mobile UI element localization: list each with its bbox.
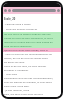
button[interactable]: Address bar bbox=[12, 9, 56, 12]
staticText: d'Egypte, pour être votre Dieu. Je suis bbox=[4, 96, 60, 97]
staticText: · Vous vous bbox=[4, 72, 60, 76]
button[interactable]: Home bbox=[8, 9, 11, 12]
staticText: · Je suis l'Eternel, votre bbox=[4, 88, 60, 92]
staticText: entraîner à l'infidélité. bbox=[4, 68, 60, 72]
button[interactable]: Back bbox=[4, 9, 7, 12]
staticText: · Vous ce que tous les commandements de bbox=[4, 52, 60, 56]
staticText: dis-leur qu'ils se fassent d'âge en âge … bbox=[4, 32, 60, 36]
staticText: saints pour votre Dieu. bbox=[4, 84, 60, 88]
staticText: mettent un cordon bleu sur cette frange … bbox=[4, 40, 60, 44]
staticText: coeur et de vos yeux, en vous laissant bbox=[4, 64, 60, 68]
staticText: Ecole, 20 bbox=[4, 17, 60, 21]
staticText: Quand vous aurez cette frange, vous la r… bbox=[4, 48, 60, 52]
staticText: souviendrez ainsi de mes commandements, bbox=[4, 76, 60, 80]
staticText: vous les mettrez en pratique, et vous se… bbox=[4, 80, 60, 84]
staticText: Dieu, qui vous ai fait sortir du pays bbox=[4, 92, 60, 96]
staticText: · L'Eternel parle à Moïse bbox=[4, 22, 60, 26]
staticText: · Parle aux enfants d'Israël et bbox=[4, 27, 60, 31]
staticText: frange au bord de leurs vêtements, et qu… bbox=[4, 36, 60, 40]
staticText: officiel, de l'un de vous ne suivrez poi… bbox=[4, 56, 60, 60]
button[interactable]: More bbox=[57, 9, 60, 12]
staticText: bord de leurs vêtements. bbox=[4, 44, 60, 48]
staticText: les désirs de votre bbox=[4, 60, 60, 64]
